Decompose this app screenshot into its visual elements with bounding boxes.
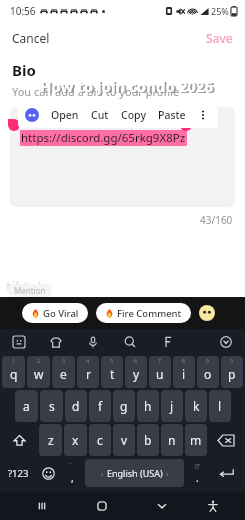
staticText: Save xyxy=(206,30,233,46)
staticText: Open xyxy=(51,108,79,122)
button[interactable]: 7 xyxy=(149,356,171,388)
staticText: tiktok xyxy=(6,277,46,295)
button[interactable]: Open in Discord xyxy=(25,108,39,122)
staticText: v xyxy=(121,432,128,448)
staticText: 25% xyxy=(211,5,229,17)
staticText: ?123 xyxy=(8,467,29,480)
button[interactable]: z xyxy=(39,424,62,456)
button[interactable]: Themes xyxy=(47,333,65,351)
button[interactable]: h xyxy=(137,390,159,422)
button[interactable]: Back xyxy=(149,493,175,519)
button[interactable]: Search emoji xyxy=(121,333,139,351)
staticText: n xyxy=(168,432,176,448)
button[interactable]: k xyxy=(185,390,207,422)
button[interactable]: ?123 xyxy=(3,459,34,487)
button[interactable]: 4 xyxy=(77,356,99,388)
button[interactable]: Stickers xyxy=(10,333,28,351)
staticText: o xyxy=(204,366,212,382)
button[interactable]: m xyxy=(185,424,207,456)
button[interactable]: Backspace xyxy=(210,425,242,455)
button[interactable]: 8 xyxy=(173,356,195,388)
button[interactable]: ̀ xyxy=(63,459,81,487)
button[interactable]: Recents xyxy=(29,493,55,519)
button[interactable]: Games discord xyxy=(10,107,235,207)
button[interactable]: Collapse keyboard xyxy=(217,333,235,351)
staticText: Go Viral xyxy=(43,307,79,320)
staticText: x xyxy=(72,432,79,448)
button[interactable]: Copy xyxy=(116,104,151,126)
staticText: 3 xyxy=(62,357,66,364)
staticText: 5 xyxy=(110,357,114,364)
button[interactable]: Emoji xyxy=(199,305,215,321)
button[interactable]: More options xyxy=(195,107,211,123)
button[interactable]: 2 xyxy=(27,356,50,388)
staticText: Bio xyxy=(12,60,36,80)
button[interactable]: 1 xyxy=(2,356,25,388)
button[interactable]: n xyxy=(161,424,183,456)
staticText: 6 xyxy=(134,357,138,364)
staticText: You can add a bio to your profile xyxy=(12,84,180,99)
button[interactable]: g xyxy=(113,390,135,422)
button[interactable]: l xyxy=(209,390,231,422)
staticText: 4 xyxy=(86,357,90,364)
button[interactable]: Cancel xyxy=(0,24,62,52)
button[interactable]: Paste xyxy=(153,104,191,126)
button[interactable]: !? xyxy=(188,459,206,487)
staticText: h xyxy=(144,398,152,414)
staticText: t xyxy=(110,366,115,382)
staticText: 0 xyxy=(230,357,234,364)
staticText: 43/160 xyxy=(200,213,233,227)
button[interactable]: Fire Comment xyxy=(96,303,191,323)
staticText: Fire Comment xyxy=(117,307,182,320)
button[interactable]: 6 xyxy=(125,356,147,388)
staticText: a xyxy=(23,398,30,414)
button[interactable]: b xyxy=(137,424,159,456)
button[interactable]: Voice input xyxy=(84,333,102,351)
button[interactable]: a xyxy=(15,390,38,422)
staticText: j xyxy=(170,398,174,414)
staticText: Copy xyxy=(121,108,146,122)
button[interactable]: x xyxy=(64,424,87,456)
staticText: m xyxy=(190,432,202,448)
staticText: , xyxy=(71,471,74,485)
staticText: d xyxy=(72,398,80,414)
button[interactable]: Enter xyxy=(210,459,242,487)
staticText: q xyxy=(10,366,18,382)
button[interactable]: 0 xyxy=(221,356,243,388)
button[interactable]: Shift xyxy=(3,425,36,455)
button[interactable]: Save xyxy=(194,24,245,52)
staticText: y xyxy=(133,366,140,382)
staticText: w xyxy=(34,366,44,382)
button[interactable]: 3 xyxy=(52,356,75,388)
staticText: Games discord xyxy=(20,113,101,129)
button[interactable]: Accessibility xyxy=(200,493,226,519)
staticText: r xyxy=(86,366,91,382)
staticText: s xyxy=(49,398,55,414)
button[interactable]: Cut xyxy=(86,104,114,126)
button[interactable]: 9 xyxy=(197,356,219,388)
button[interactable]: Translate xyxy=(159,333,177,351)
staticText: Mention xyxy=(14,285,46,296)
staticText: k xyxy=(193,398,200,414)
button[interactable]: d xyxy=(65,390,87,422)
button[interactable]: c xyxy=(89,424,111,456)
staticText: ‹ xyxy=(101,468,104,479)
button[interactable]: v xyxy=(113,424,135,456)
staticText: b xyxy=(144,432,152,448)
button[interactable]: j xyxy=(161,390,183,422)
button[interactable]: Emoji keyboard xyxy=(38,459,59,487)
button[interactable]: Open xyxy=(46,104,84,126)
button[interactable]: f xyxy=(89,390,111,422)
button[interactable]: ‹ xyxy=(85,459,184,487)
button[interactable]: Go Viral xyxy=(22,303,88,323)
staticText: p xyxy=(228,366,236,382)
staticText: › xyxy=(166,468,169,479)
button[interactable]: 5 xyxy=(101,356,123,388)
staticText: f xyxy=(98,398,103,414)
button[interactable]: s xyxy=(40,390,63,422)
staticText: g xyxy=(120,398,128,414)
staticText: c xyxy=(97,432,103,448)
staticText: l xyxy=(218,398,222,414)
staticText: https://discord.gg/65rkg9X8Pz xyxy=(21,130,186,146)
button[interactable]: Home xyxy=(89,493,115,519)
